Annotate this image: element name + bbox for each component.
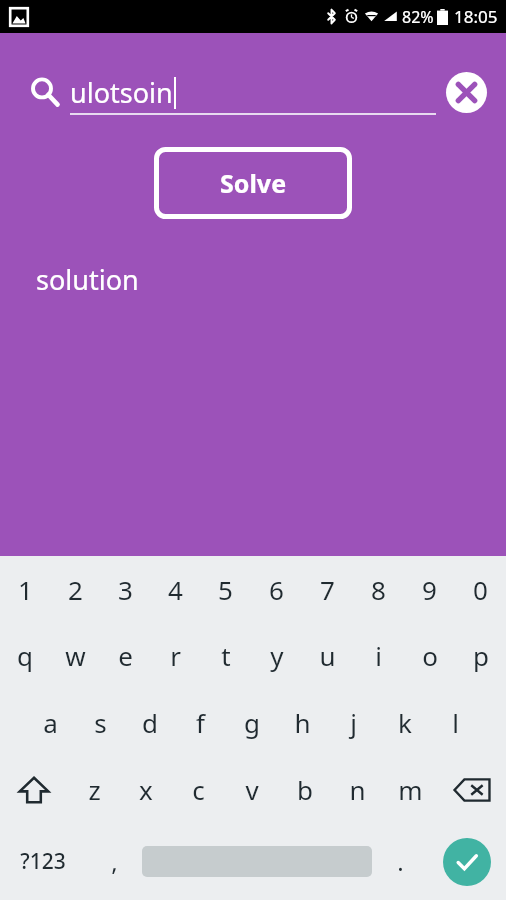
staticText: 7 [320,572,335,607]
button[interactable]: i [353,622,404,689]
button[interactable]: Search [24,71,66,113]
button[interactable]: h [277,689,328,756]
button[interactable]: 0 [455,556,506,622]
button[interactable]: 6 [251,556,302,622]
staticText: s [94,705,107,740]
button[interactable]: k [379,689,430,756]
button[interactable]: m [384,756,437,823]
staticText: 3 [118,572,133,607]
staticText: d [142,705,158,740]
staticText: 6 [269,572,284,607]
button[interactable]: ulotsoin [70,59,436,125]
staticText: u [319,638,336,673]
staticText: k [398,705,412,740]
staticText: n [349,772,366,807]
staticText: . [397,845,404,878]
staticText: p [473,638,489,673]
staticText: 82% [402,6,434,28]
staticText: ?123 [20,847,66,876]
staticText: q [17,638,33,673]
staticText: o [422,638,438,673]
button[interactable]: v [225,756,278,823]
button[interactable]: w [50,622,100,689]
button[interactable]: r [150,622,200,689]
button[interactable]: , [86,823,142,900]
button[interactable]: . [372,823,428,900]
button[interactable]: z [68,756,120,823]
button[interactable]: e [100,622,150,689]
button[interactable]: u [302,622,353,689]
staticText: 4 [168,572,183,607]
button[interactable]: f [175,689,226,756]
button[interactable]: y [251,622,302,689]
button[interactable]: Solve [154,147,352,219]
staticText: h [294,705,311,740]
staticText: ulotsoin [70,74,173,111]
button[interactable]: 5 [200,556,251,622]
staticText: f [196,705,205,740]
staticText: j [350,705,357,740]
staticText: r [170,638,181,673]
staticText: a [43,705,58,740]
button[interactable]: 8 [353,556,404,622]
staticText: w [65,638,86,673]
button[interactable]: 3 [100,556,150,622]
button[interactable]: a [25,689,75,756]
staticText: y [270,638,284,673]
button[interactable]: 4 [150,556,200,622]
button[interactable]: d [125,689,175,756]
button[interactable]: ?123 [0,823,86,900]
button[interactable]: 7 [302,556,353,622]
button[interactable]: Backspace [437,756,506,823]
staticText: 1 [18,572,33,607]
staticText: 5 [218,572,233,607]
staticText: m [398,772,423,807]
button[interactable]: 9 [404,556,455,622]
staticText: l [452,705,459,740]
staticText: solution [36,261,139,298]
button[interactable]: g [226,689,277,756]
staticText: Solve [220,166,287,200]
button[interactable]: q [0,622,50,689]
staticText: , [111,845,118,878]
staticText: c [192,772,205,807]
button[interactable]: x [120,756,172,823]
button[interactable]: t [200,622,251,689]
staticText: 8 [371,572,386,607]
staticText: x [139,772,153,807]
staticText: t [221,638,231,673]
button[interactable]: solution [36,261,139,298]
staticText: v [245,772,259,807]
button[interactable]: 1 [0,556,50,622]
staticText: b [297,772,313,807]
button[interactable]: n [331,756,384,823]
button[interactable]: l [430,689,481,756]
button[interactable]: p [455,622,506,689]
button[interactable]: o [404,622,455,689]
staticText: 9 [422,572,437,607]
staticText: i [375,638,382,673]
button[interactable]: Enter [443,838,491,886]
staticText: e [118,638,133,673]
button[interactable]: b [278,756,331,823]
button[interactable]: Clear [440,66,492,118]
button[interactable]: s [75,689,125,756]
staticText: g [244,705,260,740]
button[interactable]: j [328,689,379,756]
button[interactable]: c [172,756,225,823]
button[interactable]: 2 [50,556,100,622]
button[interactable]: Shift [0,756,68,823]
staticText: 2 [68,572,83,607]
staticText: 18:05 [454,5,498,28]
staticText: 0 [473,572,488,607]
staticText: z [88,772,101,807]
